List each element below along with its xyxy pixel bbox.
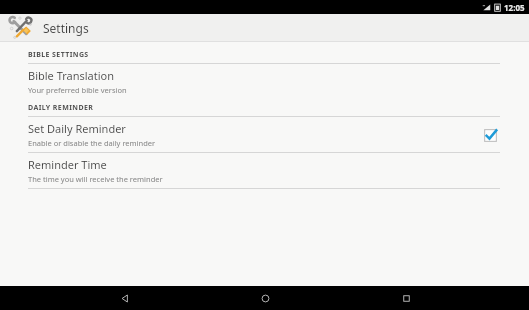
staticText: Bible Translation [28, 68, 115, 83]
button[interactable]: Reminder Time [0, 153, 529, 188]
staticText: 12:05 [504, 2, 525, 13]
button[interactable]: Bible Translation [0, 64, 529, 99]
button[interactable]: Home [247, 286, 283, 310]
button[interactable]: Set Daily Reminder [0, 117, 529, 152]
staticText: Enable or disable the daily reminder [28, 138, 156, 148]
button[interactable]: Recent apps [388, 286, 424, 310]
staticText: The time you will receive the reminder [28, 174, 163, 184]
staticText: Set Daily Reminder [28, 121, 126, 136]
staticText: Settings [43, 20, 89, 36]
staticText: Reminder Time [28, 157, 107, 172]
other: Settings tools [8, 15, 34, 41]
staticText: DAILY REMINDER [28, 103, 94, 113]
button[interactable]: Set Daily Reminder toggle [480, 125, 500, 145]
button[interactable]: Back [106, 286, 142, 310]
staticText: Your preferred bible version [28, 85, 127, 95]
staticText: BIBLE SETTINGS [28, 50, 89, 60]
